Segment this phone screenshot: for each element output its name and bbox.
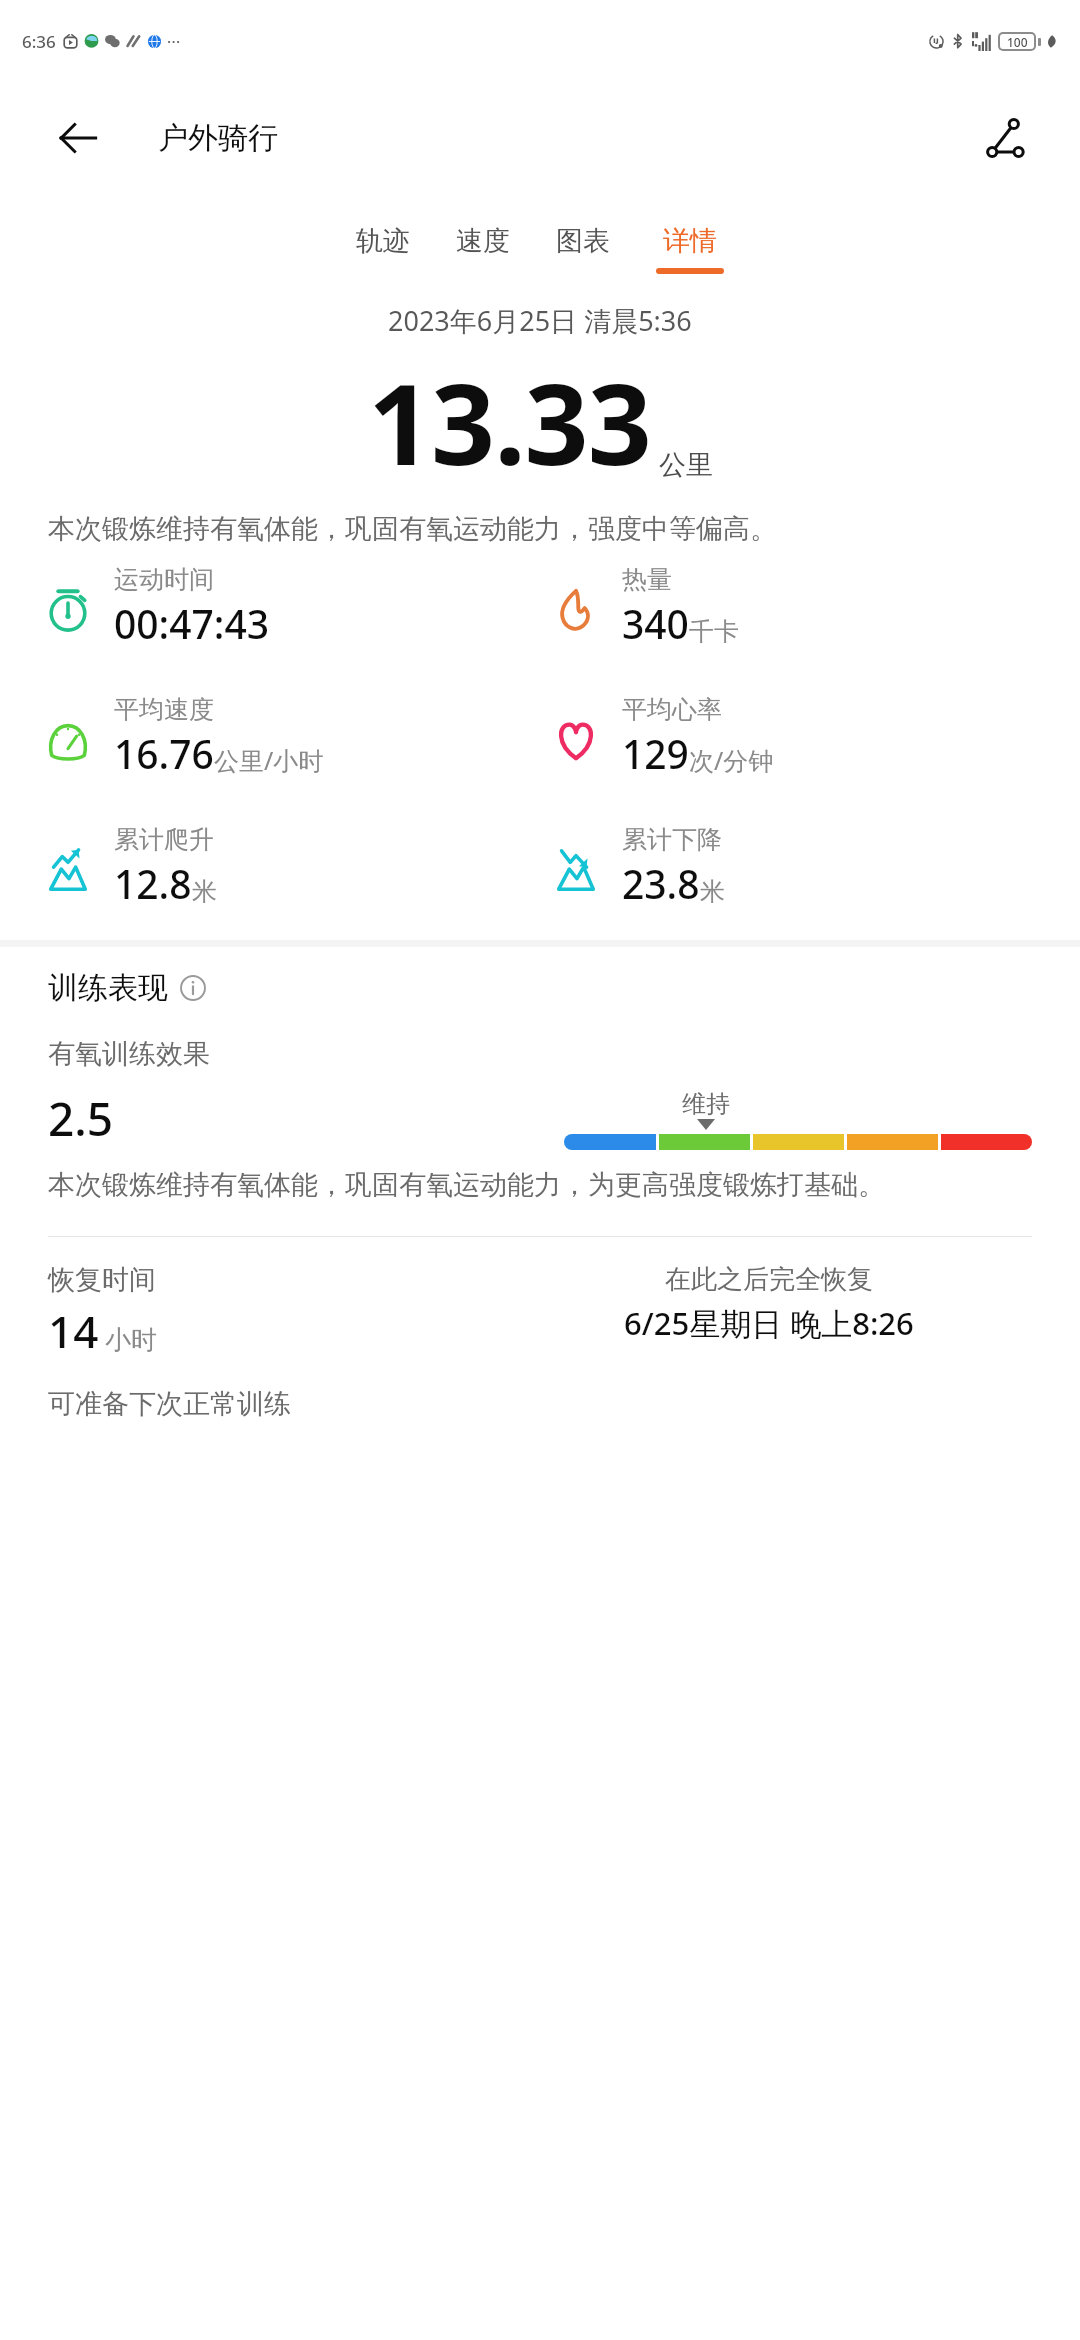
staticText: 129: [622, 727, 689, 780]
staticText: 户外骑行: [158, 119, 278, 157]
staticText: 运动时间: [114, 564, 214, 595]
staticText: 13.33: [368, 345, 651, 498]
staticText: 可准备下次正常训练: [48, 1387, 291, 1421]
button[interactable]: Back: [48, 108, 108, 168]
staticText: 速度: [456, 224, 510, 258]
button[interactable]: 热量: [552, 564, 739, 650]
button[interactable]: 轨迹: [348, 220, 418, 278]
button[interactable]: 训练表现: [48, 969, 206, 1007]
button[interactable]: 累计爬升: [44, 824, 217, 910]
staticText: 平均速度: [114, 694, 214, 725]
button[interactable]: Share: [974, 107, 1036, 169]
staticText: 千卡: [689, 616, 739, 647]
button[interactable]: 图表: [548, 220, 618, 278]
staticText: 公里/小时: [214, 743, 324, 777]
staticText: 维持: [682, 1089, 730, 1119]
staticText: 恢复时间: [48, 1263, 156, 1297]
button[interactable]: 速度: [448, 220, 518, 278]
staticText: 14: [48, 1301, 99, 1361]
staticText: 详情: [663, 224, 717, 258]
other: Info: [180, 975, 206, 1001]
staticText: 16.76: [114, 727, 214, 780]
button[interactable]: 累计下降: [552, 824, 725, 910]
staticText: 训练表现: [48, 969, 168, 1007]
staticText: 6/25星期日 晚上8:26: [624, 1302, 914, 1344]
staticText: 小时: [105, 1324, 157, 1357]
staticText: 本次锻炼维持有氧体能，巩固有氧运动能力，强度中等偏高。: [48, 512, 1032, 546]
staticText: 公里: [659, 448, 713, 482]
button[interactable]: 平均心率: [552, 694, 774, 780]
staticText: 轨迹: [356, 224, 410, 258]
button[interactable]: 平均速度: [44, 694, 324, 780]
staticText: 100: [1007, 34, 1028, 49]
staticText: 累计爬升: [114, 824, 214, 855]
staticText: 累计下降: [622, 824, 722, 855]
button[interactable]: 运动时间: [44, 564, 270, 650]
staticText: 12.8: [114, 857, 192, 910]
staticText: 平均心率: [622, 694, 722, 725]
staticText: 在此之后完全恢复: [665, 1263, 873, 1296]
staticText: 米: [192, 876, 217, 907]
staticText: 23.8: [622, 857, 700, 910]
staticText: 340: [622, 597, 689, 650]
staticText: 00:47:43: [114, 597, 270, 650]
staticText: 2023年6月25日 清晨5:36: [388, 302, 692, 339]
staticText: 有氧训练效果: [48, 1037, 210, 1071]
staticText: 次/分钟: [689, 743, 774, 777]
staticText: 米: [700, 876, 725, 907]
staticText: 本次锻炼维持有氧体能，巩固有氧运动能力，为更高强度锻炼打基础。: [48, 1168, 885, 1202]
staticText: 6:36: [22, 30, 56, 53]
staticText: 2.5: [48, 1087, 114, 1150]
button[interactable]: 详情: [648, 220, 732, 278]
staticText: 热量: [622, 564, 672, 595]
staticText: 图表: [556, 224, 610, 258]
